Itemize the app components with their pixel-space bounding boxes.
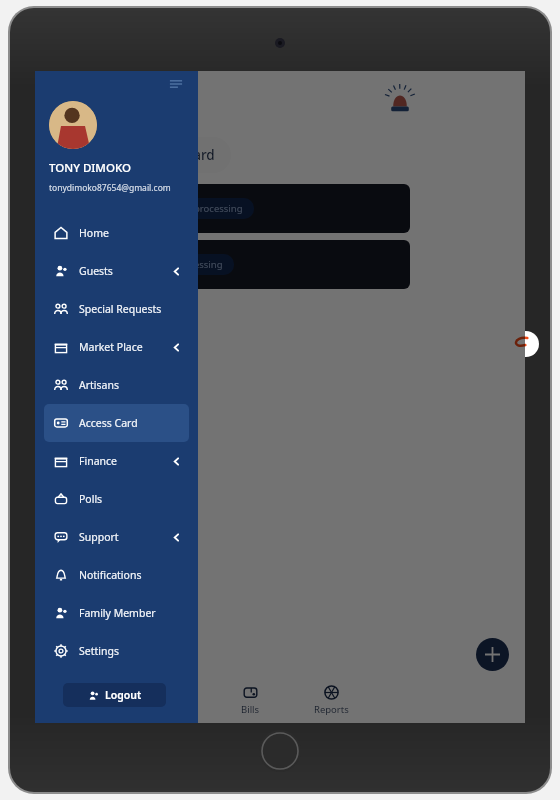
button[interactable]: Access Card [44, 404, 189, 442]
button[interactable]: Reports [291, 677, 372, 723]
staticText: Access Card [79, 416, 138, 430]
staticText: Family Member [79, 606, 156, 620]
staticText: Bills [241, 703, 260, 716]
button[interactable]: Home [44, 214, 189, 252]
staticText: Market Place [79, 340, 143, 354]
staticText: Notifications [79, 568, 142, 582]
staticText: Home [79, 226, 109, 240]
button[interactable]: Request Access Card [43, 137, 231, 173]
staticText: tonydimoko87654@gmail.com [49, 182, 171, 194]
button[interactable]: Finance [44, 442, 189, 480]
staticText: processing [194, 202, 243, 215]
staticText: Polls [79, 492, 103, 506]
button[interactable]: Joy Dimoko [81, 240, 410, 289]
staticText: Joy Dimoko [93, 258, 149, 272]
staticText: processing [174, 258, 223, 271]
button[interactable]: Market [129, 677, 210, 723]
button[interactable]: Add [476, 638, 509, 671]
staticText: TONY DIMOKO [49, 160, 131, 176]
button[interactable]: TONY DIMOKO [81, 184, 410, 233]
staticText: Guests [79, 264, 113, 278]
button[interactable]: Estate [49, 677, 129, 723]
button[interactable]: Guests [44, 252, 189, 290]
button[interactable]: Market Place [44, 328, 189, 366]
staticText: Special Requests [79, 302, 162, 316]
staticText: Request Access Card [82, 146, 215, 164]
button[interactable]: Notifications [44, 556, 189, 594]
staticText: Access Card [80, 90, 168, 111]
button[interactable]: Bills [210, 677, 291, 723]
staticText: Reports [314, 703, 349, 716]
staticText: Estate [75, 703, 103, 716]
button[interactable]: Menu [168, 76, 184, 92]
button[interactable]: Logout [63, 683, 166, 707]
button[interactable]: Family Member [44, 594, 189, 632]
staticText: Settings [79, 644, 119, 658]
staticText: Finance [79, 454, 117, 468]
button[interactable]: Promo [503, 331, 539, 357]
button[interactable]: Polls [44, 480, 189, 518]
button[interactable]: Emergency [380, 80, 420, 120]
staticText: Logout [105, 688, 142, 702]
staticText: Support [79, 530, 119, 544]
button[interactable]: Settings [44, 632, 189, 670]
staticText: Artisans [79, 378, 119, 392]
button[interactable]: Artisans [44, 366, 189, 404]
staticText: Market [154, 703, 186, 716]
button[interactable]: Support [44, 518, 189, 556]
button[interactable]: Special Requests [44, 290, 189, 328]
